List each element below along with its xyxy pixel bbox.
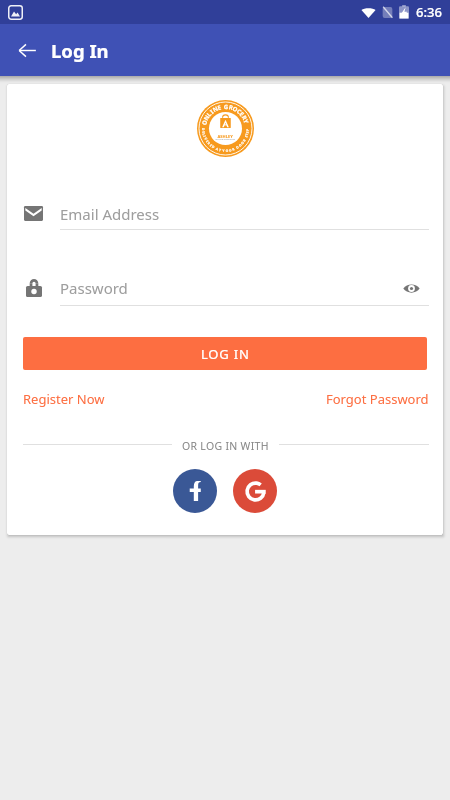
button[interactable]: Log in with Facebook [173,469,217,513]
button[interactable]: Forgot Password [326,390,429,408]
staticText: Register Now [23,390,105,408]
staticText: Log In [51,38,109,63]
staticText: 6:36 [416,3,442,21]
button[interactable]: Log in with Google [233,469,277,513]
staticText: Forgot Password [326,390,429,408]
staticText: OR LOG IN WITH [182,439,269,453]
staticText: Password [60,278,128,298]
button[interactable]: Show password [396,274,426,302]
staticText: Email Address [60,204,160,224]
button[interactable]: Register Now [23,390,105,408]
button[interactable]: Back [0,24,52,76]
button[interactable]: LOG IN [23,337,427,370]
staticText: LOG IN [201,345,250,363]
